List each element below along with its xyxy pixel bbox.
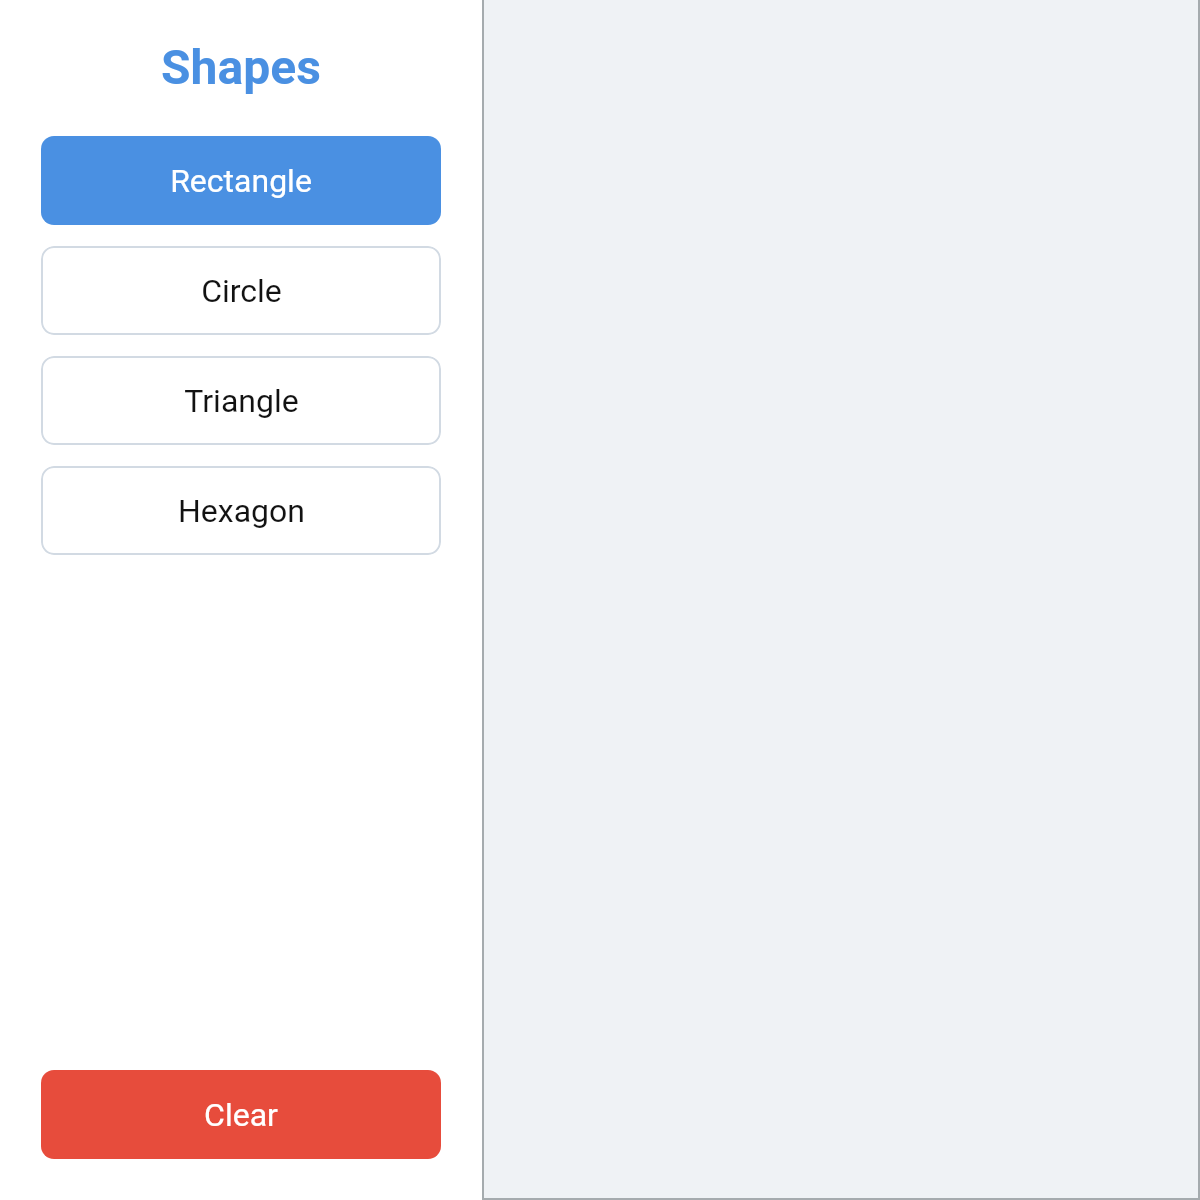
staticText: Shapes: [41, 39, 441, 95]
staticText: Rectangle: [170, 162, 312, 200]
staticText: Clear: [204, 1096, 278, 1134]
button[interactable]: Hexagon: [41, 466, 441, 555]
button[interactable]: Drawing canvas: [482, 0, 1200, 1200]
button[interactable]: Triangle: [41, 356, 441, 445]
button[interactable]: Rectangle: [41, 136, 441, 225]
staticText: Triangle: [184, 382, 299, 420]
button[interactable]: Circle: [41, 246, 441, 335]
button[interactable]: Clear: [41, 1070, 441, 1159]
staticText: Circle: [201, 272, 282, 310]
staticText: Hexagon: [178, 492, 305, 530]
